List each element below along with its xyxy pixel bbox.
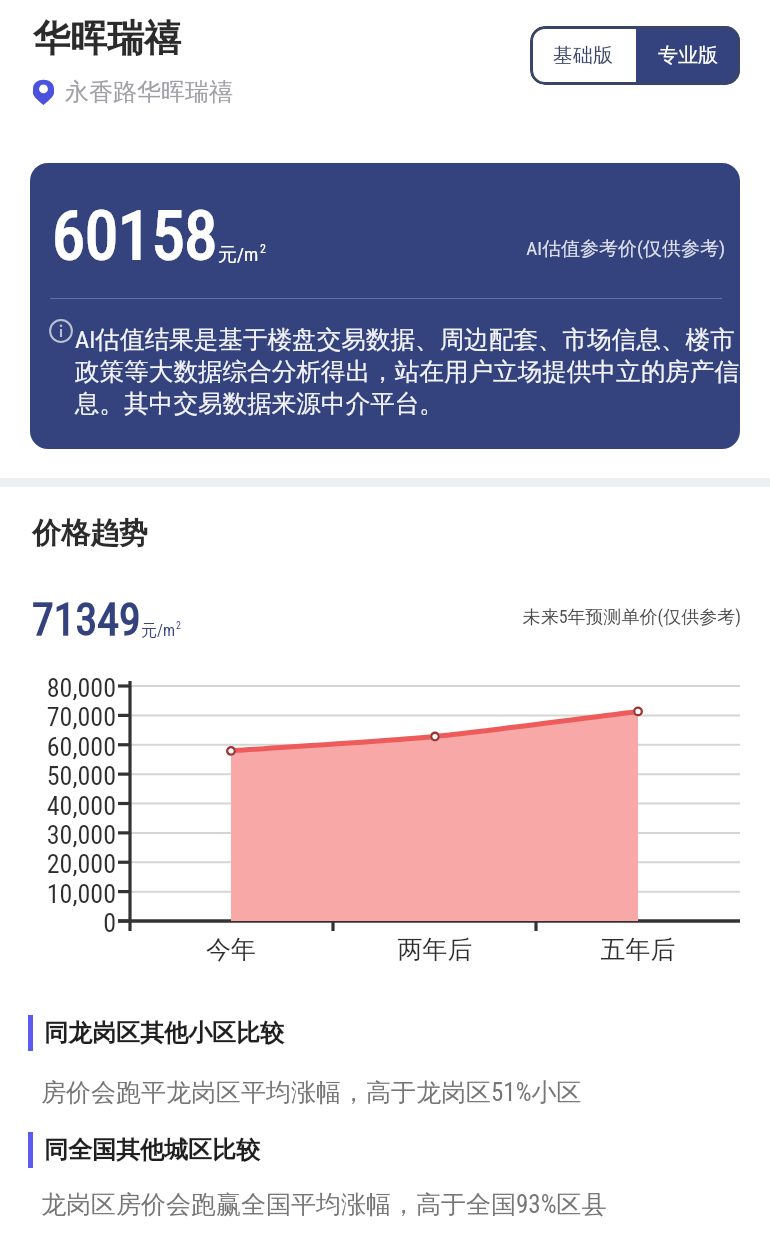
staticText: 70,000 [0, 702, 116, 732]
staticText: 元/m [218, 243, 259, 267]
staticText: 元/m [141, 621, 175, 641]
button[interactable]: 专业版 [636, 26, 740, 85]
staticText: 2 [260, 242, 266, 256]
button[interactable]: 基础版 [530, 26, 636, 85]
staticText: 价格趋势 [32, 515, 148, 552]
staticText: 0 [0, 908, 116, 938]
staticText: 未来5年预测单价(仅供参考) [380, 606, 741, 629]
staticText: AI估值结果是基于楼盘交易数据、周边配套、市场信息、楼市政策等大数据综合分析得出… [75, 324, 740, 419]
staticText: 龙岗区房价会跑赢全国平均涨幅，高于全国93%区县 [41, 1189, 607, 1220]
staticText: 60158 [52, 197, 218, 276]
staticText: 20,000 [0, 849, 116, 879]
staticText: 两年后 [375, 934, 495, 965]
staticText: 60,000 [0, 732, 116, 762]
staticText: 50,000 [0, 761, 116, 791]
staticText: AI估值参考价(仅供参考) [350, 237, 725, 261]
staticText: 80,000 [0, 673, 116, 703]
staticText: 10,000 [0, 879, 116, 909]
staticText: 五年后 [578, 934, 698, 965]
staticText: 同龙岗区其他小区比较 [44, 1018, 284, 1048]
staticText: 今年 [171, 934, 291, 965]
staticText: 同全国其他城区比较 [44, 1135, 260, 1165]
staticText: 40,000 [0, 791, 116, 821]
staticText: 房价会跑平龙岗区平均涨幅，高于龙岗区51%小区 [41, 1077, 582, 1108]
staticText: 华晖瑞禧 [33, 15, 181, 62]
staticText: 基础版 [553, 43, 613, 68]
staticText: 2 [176, 620, 181, 632]
staticText: 71349 [32, 594, 141, 646]
staticText: 专业版 [658, 43, 718, 68]
staticText: 30,000 [0, 820, 116, 850]
staticText: 永香路华晖瑞禧 [65, 77, 233, 107]
